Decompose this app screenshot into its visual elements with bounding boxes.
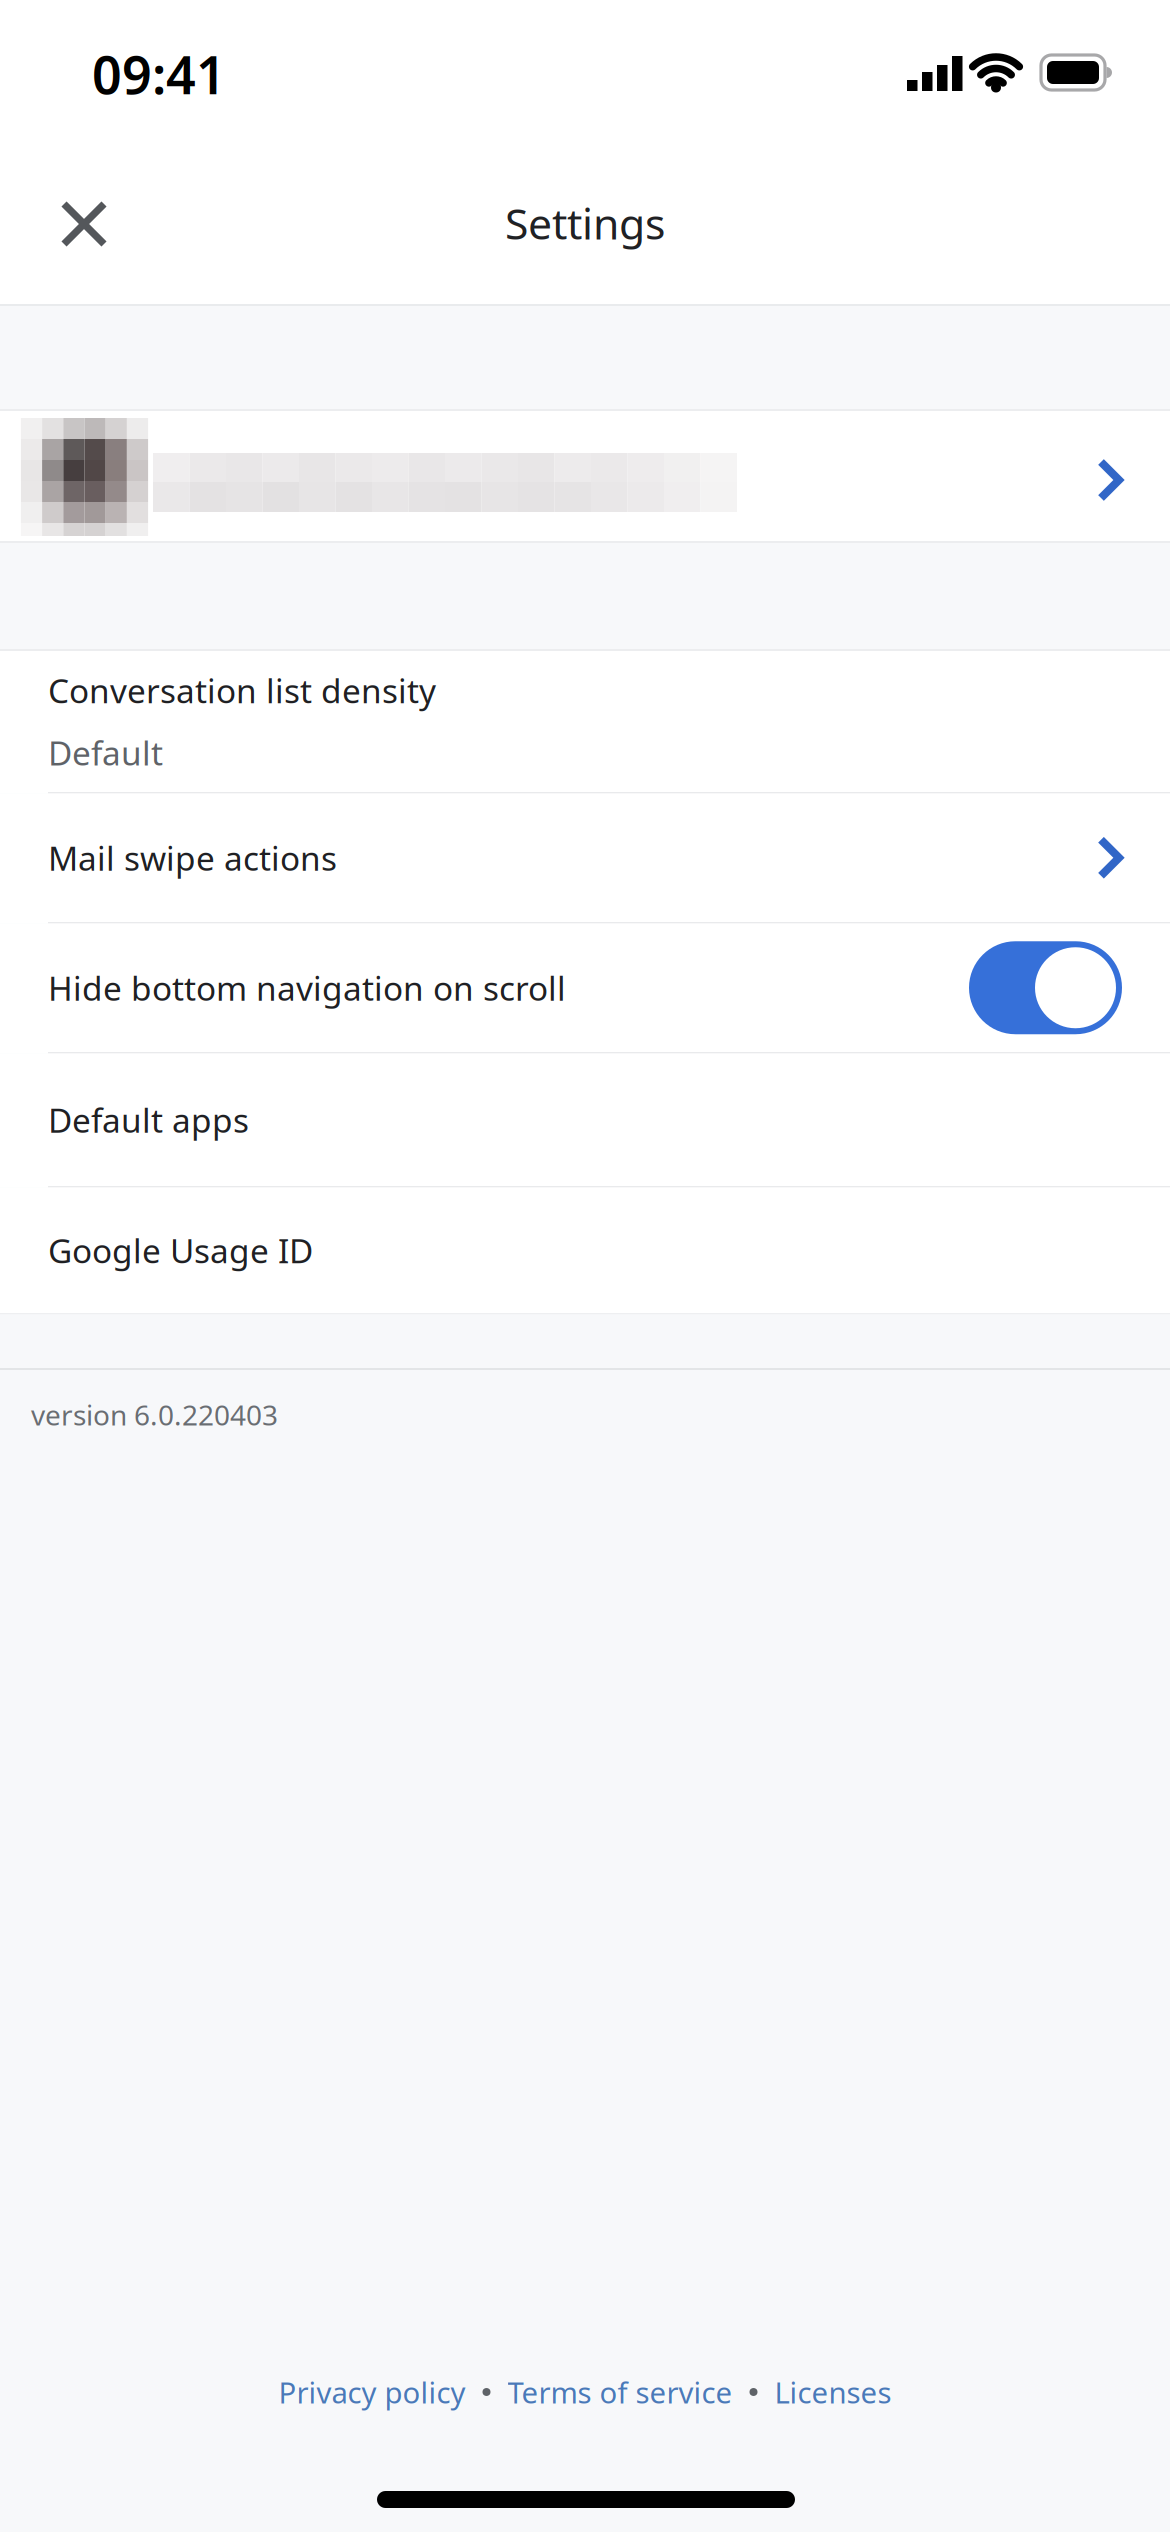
staticText: Privacy policy (278, 2372, 465, 2411)
staticText: Terms of service (507, 2372, 732, 2411)
button[interactable]: Google Usage ID (0, 1187, 1170, 1313)
button[interactable]: Default apps (0, 1053, 1170, 1186)
button[interactable]: Mail swipe actions (0, 793, 1170, 922)
staticText: Google Usage ID (48, 1228, 313, 1272)
staticText: Conversation list density (48, 668, 436, 712)
button[interactable]: Hide bottom navigation on scroll (0, 923, 1170, 1052)
button[interactable]: Privacy policy (278, 2372, 465, 2411)
staticText: Mail swipe actions (48, 836, 337, 880)
staticText: Licenses (774, 2372, 891, 2411)
button[interactable]: Conversation list density (0, 651, 1170, 792)
staticText: 09:41 (92, 39, 226, 109)
staticText: Default apps (48, 1098, 249, 1142)
staticText: version 6.0.220403 (31, 1396, 278, 1433)
button[interactable]: Account (0, 411, 1170, 541)
button[interactable]: Licenses (774, 2372, 891, 2411)
staticText: Hide bottom navigation on scroll (48, 966, 566, 1010)
staticText: Settings (505, 195, 665, 251)
button[interactable]: Close (36, 176, 132, 272)
staticText: Default (48, 730, 163, 775)
button[interactable]: Terms of service (507, 2372, 732, 2411)
